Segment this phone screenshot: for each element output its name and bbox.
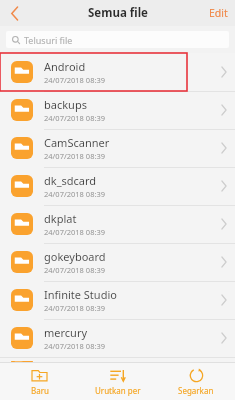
staticText: 24/07/2018 08:39	[44, 227, 106, 237]
staticText: Edit	[209, 6, 228, 20]
button[interactable]: Segarkan	[157, 363, 235, 400]
staticText: 24/07/2018 08:39	[44, 341, 106, 351]
staticText: dkplat	[44, 211, 77, 226]
staticText: Urutkan per	[95, 385, 141, 396]
staticText: mercury	[44, 325, 88, 340]
button[interactable]: Back	[0, 0, 30, 26]
staticText: CamScanner	[44, 135, 110, 150]
staticText: Semua file	[88, 5, 148, 21]
button[interactable]: mercury	[0, 319, 235, 357]
button[interactable]: Android	[0, 53, 235, 91]
button[interactable]: backups	[0, 91, 235, 129]
staticText: Infinite Studio	[44, 287, 117, 302]
staticText: 24/07/2018 08:39	[44, 113, 106, 123]
staticText: 24/07/2018 08:39	[44, 75, 106, 85]
button[interactable]: Baru	[0, 363, 79, 400]
button[interactable]: dkplat	[0, 205, 235, 243]
button[interactable]: gokeyboard	[0, 243, 235, 281]
button[interactable]: Infinite Studio	[0, 281, 235, 319]
staticText: backups	[44, 97, 87, 112]
staticText: 24/07/2018 08:39	[44, 151, 106, 161]
button[interactable]: dk_sdcard	[0, 167, 235, 205]
staticText: 24/07/2018 08:39	[44, 303, 106, 313]
button[interactable]: Urutkan per	[79, 363, 157, 400]
staticText: Segarkan	[178, 385, 214, 396]
staticText: 24/07/2018 08:39	[44, 265, 106, 275]
staticText: Android	[44, 59, 86, 74]
staticText: Baru	[31, 385, 49, 396]
staticText: 24/07/2018 08:39	[44, 189, 106, 199]
staticText: gokeyboard	[44, 249, 106, 264]
button[interactable]: Telusuri file	[6, 31, 229, 48]
button[interactable]: Edit	[209, 6, 228, 20]
staticText: dk_sdcard	[44, 173, 97, 188]
button[interactable]	[0, 357, 235, 362]
staticText: Telusuri file	[24, 34, 73, 46]
button[interactable]: CamScanner	[0, 129, 235, 167]
